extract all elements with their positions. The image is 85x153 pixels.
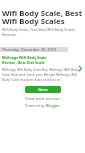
staticText: . bbox=[60, 103, 61, 108]
button[interactable]: Blogger bbox=[46, 103, 60, 108]
button[interactable]: Withings Wifi Body Scale Review - Best D… bbox=[2, 55, 47, 65]
button[interactable]: Home bbox=[25, 86, 61, 93]
staticText: Thursday, December 30, 2010 bbox=[2, 47, 57, 52]
button[interactable]: Read more bbox=[78, 65, 83, 72]
staticText: Wifi Body Scale, Best Wifi Body Scales bbox=[2, 8, 83, 26]
button[interactable]: View web version bbox=[0, 95, 85, 101]
staticText: Home bbox=[38, 87, 48, 92]
staticText: Wifi Body Scale, Find Best Wifi Body Sca… bbox=[2, 27, 75, 37]
staticText: Powered by bbox=[25, 103, 46, 108]
staticText: Withings Wifi Body Scale Buy Withings Wi… bbox=[2, 67, 80, 82]
